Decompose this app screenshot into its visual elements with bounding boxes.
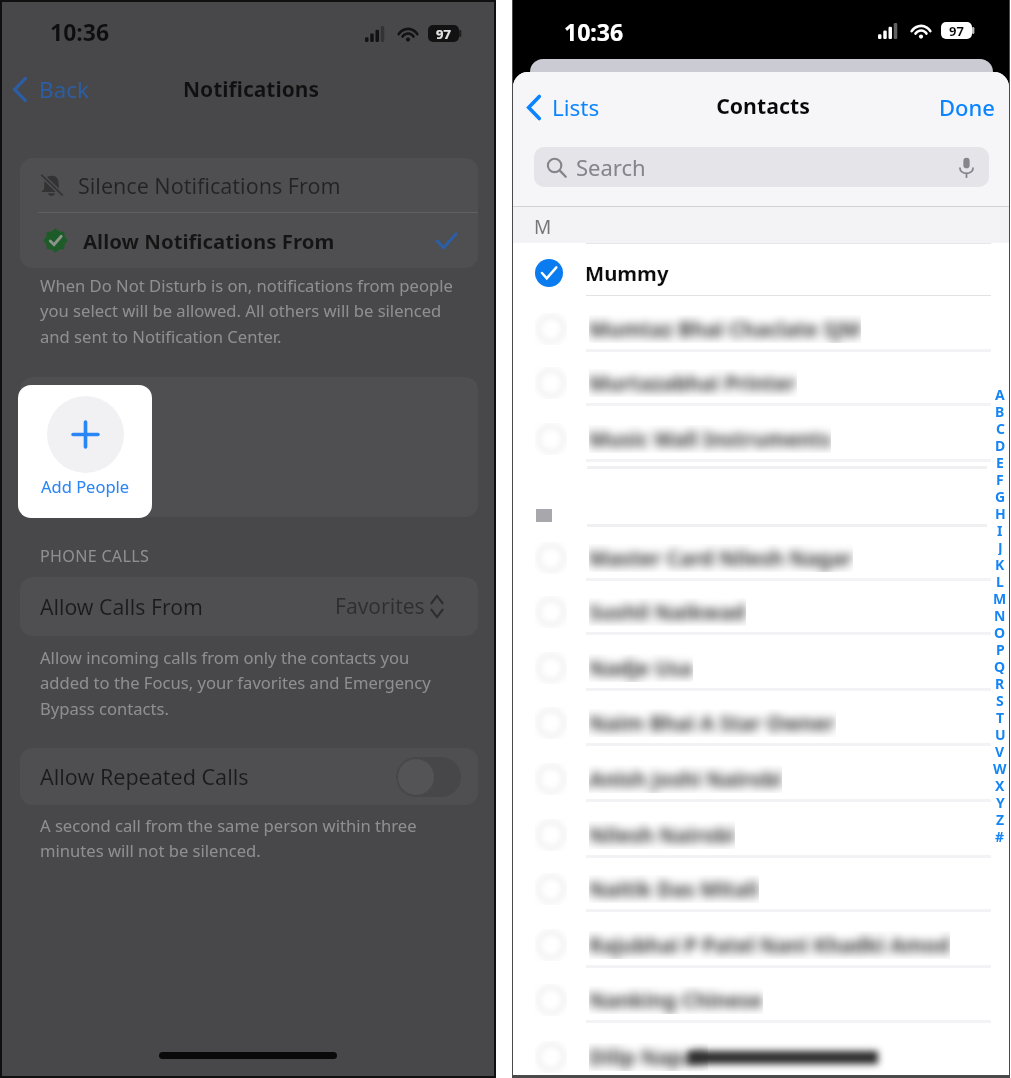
staticText: Mummy: [585, 259, 669, 287]
button[interactable]: G: [991, 487, 1009, 504]
staticText: Y: [996, 793, 1005, 810]
button[interactable]: Y: [991, 793, 1009, 810]
button[interactable]: T: [991, 708, 1009, 725]
staticText: M: [534, 214, 552, 240]
button[interactable]: Back: [7, 71, 96, 108]
staticText: H: [995, 504, 1006, 521]
staticText: Search: [576, 152, 646, 182]
staticText: O: [994, 623, 1006, 640]
button[interactable]: Q: [991, 657, 1009, 674]
staticText: T: [996, 708, 1005, 725]
button[interactable]: Music Wall Instruments: [513, 411, 1009, 466]
staticText: #: [995, 827, 1005, 844]
staticText: 97: [949, 22, 964, 39]
staticText: G: [995, 487, 1006, 504]
staticText: Allow incoming calls from only the conta…: [40, 646, 431, 720]
button[interactable]: Mummy: [513, 245, 1009, 300]
staticText: E: [996, 453, 1004, 470]
button[interactable]: H: [991, 504, 1009, 521]
button[interactable]: Lists: [521, 87, 606, 127]
button[interactable]: O: [991, 623, 1009, 640]
button[interactable]: Anish Joshi Nairobi: [513, 751, 1009, 806]
staticText: Done: [939, 92, 995, 122]
button[interactable]: Dilip Napali: [513, 1029, 1009, 1075]
staticText: Contacts: [515, 91, 1009, 120]
button[interactable]: K: [991, 555, 1009, 572]
button[interactable]: Allow Calls From: [20, 577, 478, 636]
button[interactable]: I: [991, 521, 1009, 538]
staticText: 97: [436, 25, 451, 42]
button[interactable]: P: [991, 640, 1009, 657]
staticText: Anish Joshi Nairobi: [589, 765, 782, 793]
button[interactable]: Allow Repeated Calls: [20, 748, 478, 805]
staticText: I: [997, 521, 1003, 538]
button[interactable]: C: [991, 419, 1009, 436]
button[interactable]: Sushil Naikwad: [513, 584, 1009, 639]
button[interactable]: Nanking Chinese: [513, 972, 1009, 1027]
staticText: R: [995, 674, 1005, 691]
button[interactable]: R: [991, 674, 1009, 691]
staticText: U: [995, 725, 1006, 742]
staticText: M: [993, 589, 1007, 606]
button[interactable]: Silence Notifications From: [20, 158, 478, 212]
button[interactable]: N: [991, 606, 1009, 623]
button[interactable]: Mumtaz Bhai Chaclate SJM: [513, 301, 1009, 356]
staticText: Master Card Nilesh Nagar: [589, 544, 853, 572]
button[interactable]: Naim Bhai A Star Owner: [513, 695, 1009, 750]
staticText: 10:36: [564, 16, 624, 47]
staticText: D: [995, 436, 1006, 453]
button[interactable]: Add People: [18, 385, 152, 518]
button[interactable]: W: [991, 759, 1009, 776]
button[interactable]: Z: [991, 810, 1009, 827]
staticText: Allow Repeated Calls: [40, 762, 249, 791]
staticText: Add People: [41, 475, 130, 497]
staticText: B: [995, 402, 1005, 419]
staticText: V: [995, 742, 1005, 759]
button[interactable]: B: [991, 402, 1009, 419]
button[interactable]: #: [991, 827, 1009, 844]
button[interactable]: Nadje Usa: [513, 640, 1009, 695]
staticText: PHONE CALLS: [40, 545, 150, 567]
staticText: Z: [996, 810, 1005, 827]
staticText: Nadje Usa: [589, 654, 693, 682]
button[interactable]: E: [991, 453, 1009, 470]
button[interactable]: Done: [933, 87, 1001, 127]
staticText: P: [996, 640, 1005, 657]
staticText: W: [993, 759, 1007, 776]
button[interactable]: Murtazabhai Printer: [513, 355, 1009, 410]
button[interactable]: J: [991, 538, 1009, 555]
staticText: Q: [994, 657, 1006, 674]
button[interactable]: U: [991, 725, 1009, 742]
button[interactable]: Naitik Das Mitali: [513, 861, 1009, 916]
button[interactable]: X: [991, 776, 1009, 793]
staticText: K: [995, 555, 1005, 572]
button[interactable]: V: [991, 742, 1009, 759]
staticText: 10:36: [50, 16, 110, 47]
button[interactable]: Master Card Nilesh Nagar: [513, 530, 1009, 585]
button[interactable]: F: [991, 470, 1009, 487]
staticText: Silence Notifications From: [78, 171, 341, 200]
button[interactable]: D: [991, 436, 1009, 453]
button[interactable]: Allow Notifications From: [20, 213, 478, 268]
staticText: Back: [39, 74, 90, 105]
button[interactable]: S: [991, 691, 1009, 708]
staticText: Murtazabhai Printer: [589, 369, 797, 397]
staticText: N: [994, 606, 1006, 623]
staticText: Nilesh Nairobi: [589, 821, 735, 849]
button[interactable]: M: [991, 589, 1009, 606]
staticText: Naim Bhai A Star Owner: [589, 709, 836, 737]
button[interactable]: L: [991, 572, 1009, 589]
staticText: Favorites: [335, 592, 425, 621]
staticText: Nanking Chinese: [589, 986, 763, 1014]
staticText: When Do Not Disturb is on, notifications…: [40, 274, 453, 348]
button[interactable]: Nilesh Nairobi: [513, 807, 1009, 862]
staticText: Lists: [552, 92, 600, 123]
button[interactable]: Allow Repeated Calls toggle: [396, 757, 461, 797]
button[interactable]: Rajubhai P Patel Nani Khadki Amod: [513, 917, 1009, 972]
staticText: Sushil Naikwad: [589, 598, 746, 626]
staticText: Mumtaz Bhai Chaclate SJM: [589, 315, 861, 343]
staticText: Dilip Napali: [589, 1043, 708, 1071]
staticText: L: [996, 572, 1004, 589]
button[interactable]: Search: [534, 147, 989, 187]
button[interactable]: A: [991, 385, 1009, 402]
